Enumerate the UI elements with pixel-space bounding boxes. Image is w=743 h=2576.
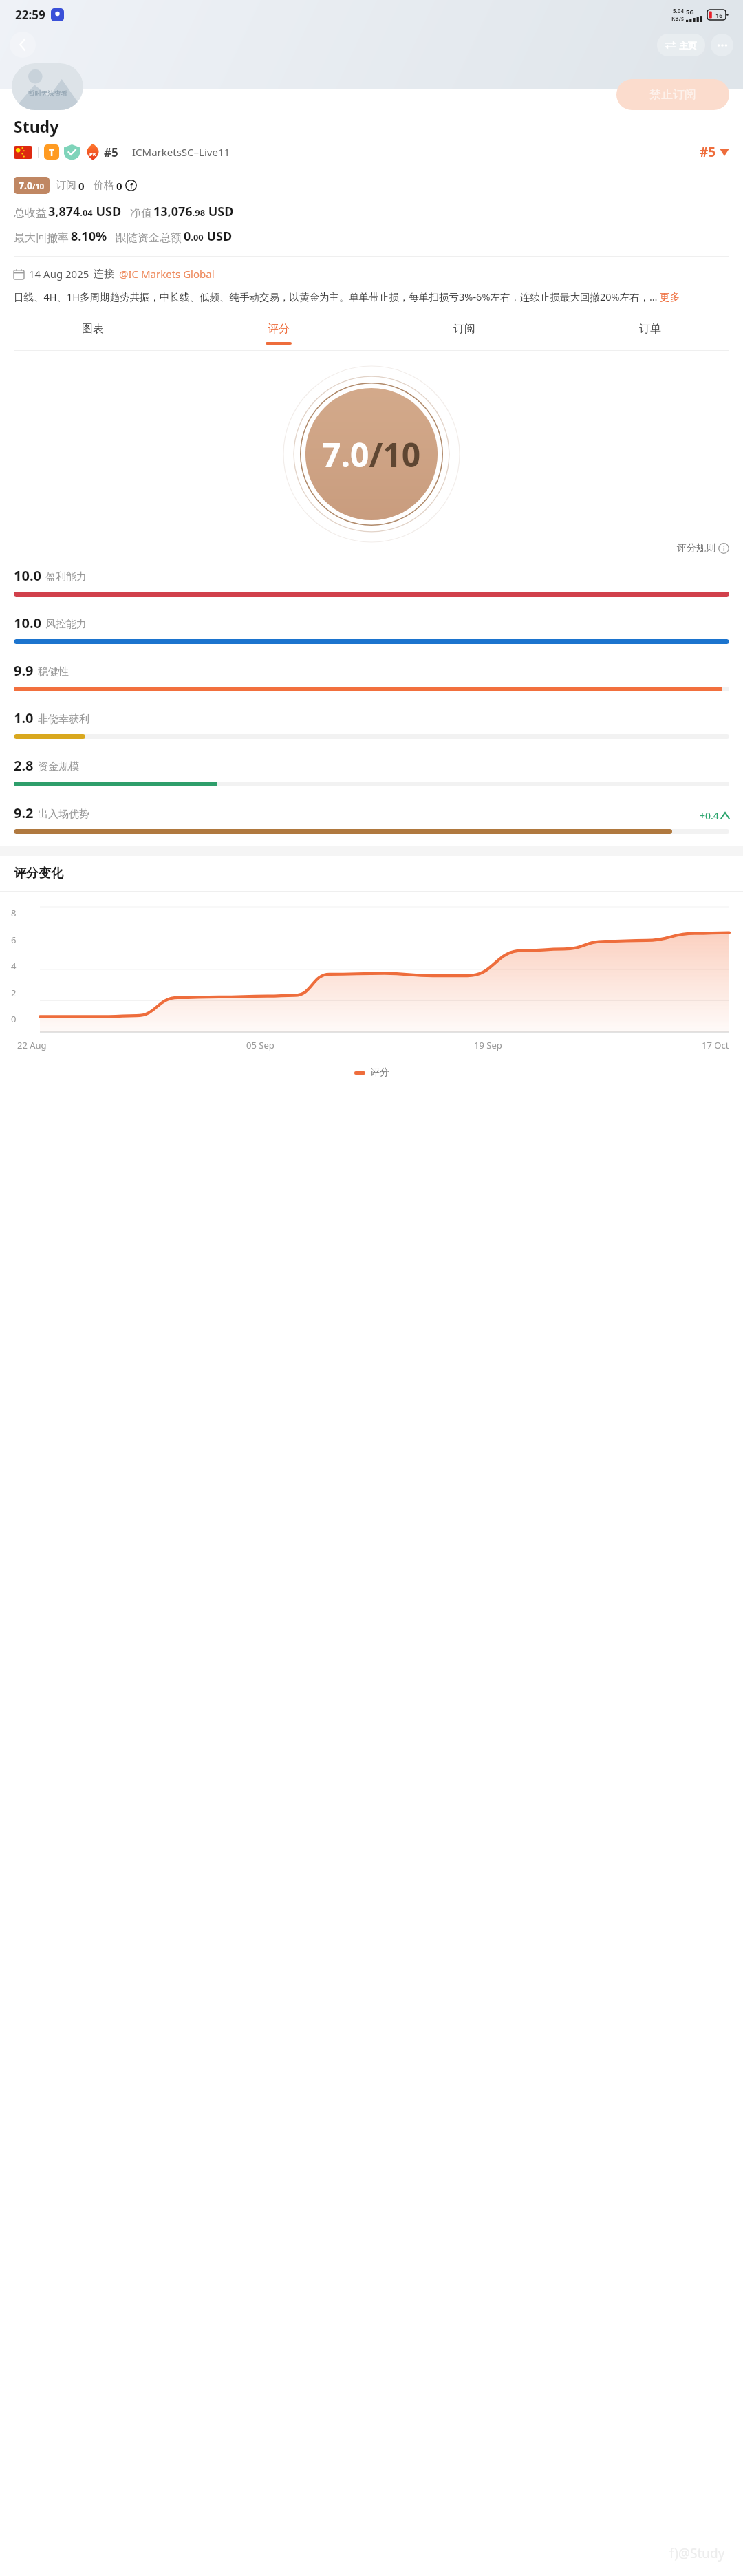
staticText: 4 (11, 960, 17, 972)
staticText: 16 (715, 11, 723, 19)
staticText: 10.0 (14, 614, 41, 632)
staticText: 0 (11, 1013, 17, 1025)
staticText: ICMarketsSC–Live11 (132, 145, 230, 159)
staticText: 盈利能力 (45, 570, 87, 583)
staticText: 8 (11, 907, 17, 919)
staticText: 2.8 (14, 756, 34, 775)
staticText: 05 Sep (246, 1039, 274, 1051)
staticText: 订阅 (453, 322, 475, 336)
staticText: Study (14, 116, 59, 137)
staticText: 最大回撤率 (14, 231, 69, 245)
staticText: 8.10% (71, 228, 107, 245)
staticText: 非侥幸获利 (38, 713, 89, 726)
staticText: 7.0/10 (19, 179, 45, 192)
staticText: 7.0/10 (322, 432, 421, 477)
staticText: 5G (686, 8, 694, 16)
staticText: 0 (78, 179, 85, 193)
staticText: 订阅 (56, 179, 76, 192)
staticText: 1.0 (14, 709, 34, 727)
button[interactable]: More options (711, 34, 733, 56)
staticText: f)@Study (669, 2544, 725, 2562)
staticText: 评分变化 (14, 866, 63, 881)
staticText: 图表 (82, 322, 104, 336)
button[interactable]: @IC Markets Global (119, 267, 215, 281)
staticText: T (49, 146, 55, 159)
button[interactable]: 评分 (186, 316, 371, 350)
button[interactable]: 订阅 (371, 316, 557, 350)
staticText: KB/s (671, 14, 684, 22)
staticText: 3,874.04 USD (48, 203, 122, 220)
staticText: 资金规模 (38, 760, 79, 773)
staticText: f (130, 181, 133, 191)
button[interactable]: 评分规则 (677, 542, 729, 555)
staticText: 9.2 (14, 804, 34, 822)
button[interactable]: 图表 (0, 316, 186, 350)
button[interactable]: 禁止订阅 (616, 79, 729, 110)
button[interactable]: 主页 (657, 34, 705, 56)
staticText: 连接 (94, 268, 114, 281)
staticText: #5 (700, 143, 716, 161)
staticText: 风控能力 (45, 618, 87, 631)
staticText: 总收益 (14, 206, 47, 220)
staticText: 19 Sep (474, 1039, 502, 1051)
staticText: 订单 (639, 322, 661, 336)
staticText: 22:59 (15, 7, 45, 23)
staticText: 暂时无法查看 (28, 89, 67, 98)
staticText: 13,076.98 USD (153, 203, 234, 220)
staticText: PK (89, 151, 96, 158)
staticText: #5 (104, 144, 118, 160)
staticText: 净值 (130, 206, 152, 220)
staticText: 出入场优势 (38, 808, 89, 821)
staticText: 2 (11, 987, 17, 999)
staticText: 跟随资金总额 (116, 231, 182, 245)
staticText: 评分 (268, 322, 290, 336)
staticText: 评分规则 (677, 542, 715, 555)
staticText: i (723, 544, 725, 552)
staticText: 稳健性 (38, 665, 69, 678)
staticText: 17 Oct (702, 1039, 729, 1051)
staticText: 评分 (370, 1066, 389, 1079)
button[interactable]: 暂时无法查看 (12, 63, 83, 110)
staticText: 0.00 USD (184, 228, 233, 245)
staticText: 5.04 (673, 7, 684, 14)
staticText: 6 (11, 934, 17, 946)
staticText: @IC Markets Global (119, 267, 215, 281)
staticText: 禁止订阅 (649, 87, 696, 102)
staticText: 10.0 (14, 566, 41, 585)
staticText: 日线、4H、1H多周期趋势共振，中长线、低频、纯手动交易，以黄金为主。单单带止损… (14, 290, 680, 303)
staticText: 价格 (94, 179, 114, 192)
staticText: 9.9 (14, 661, 34, 680)
staticText: +0.4 (700, 809, 719, 822)
staticText: 14 Aug 2025 (29, 267, 89, 281)
button[interactable]: #5 (700, 143, 729, 161)
staticText: 22 Aug (17, 1039, 47, 1051)
staticText: 0 (116, 179, 122, 193)
staticText: 主页 (679, 40, 697, 51)
button[interactable]: 订单 (557, 316, 743, 350)
